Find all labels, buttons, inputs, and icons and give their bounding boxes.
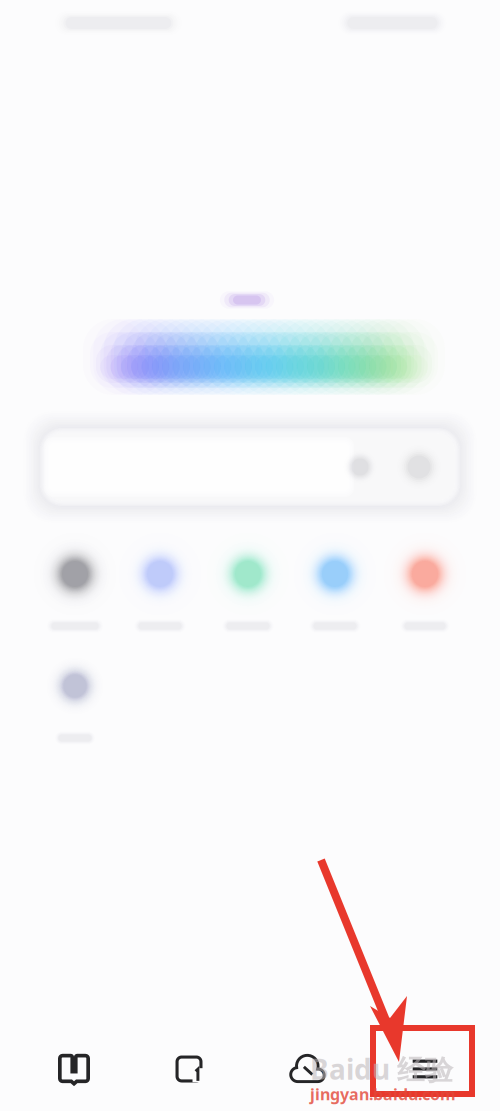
- staticText: jingyan.baidu.com: [310, 1083, 456, 1105]
- button[interactable]: Shortcut 6: [32, 643, 118, 747]
- button[interactable]: Shortcut 3: [205, 531, 291, 635]
- button[interactable]: Shortcut 5: [382, 531, 468, 635]
- button[interactable]: Cloud: [260, 1040, 356, 1098]
- button[interactable]: Search: [0, 407, 500, 527]
- button[interactable]: Menu: [377, 1040, 473, 1098]
- staticText: Baidu 经验: [310, 1050, 453, 1088]
- button[interactable]: Tabs: [141, 1040, 237, 1098]
- button[interactable]: Shortcut 1: [32, 531, 118, 635]
- button[interactable]: Bookmarks: [26, 1040, 122, 1098]
- button[interactable]: Shortcut 2: [117, 531, 203, 635]
- button[interactable]: Shortcut 4: [292, 531, 378, 635]
